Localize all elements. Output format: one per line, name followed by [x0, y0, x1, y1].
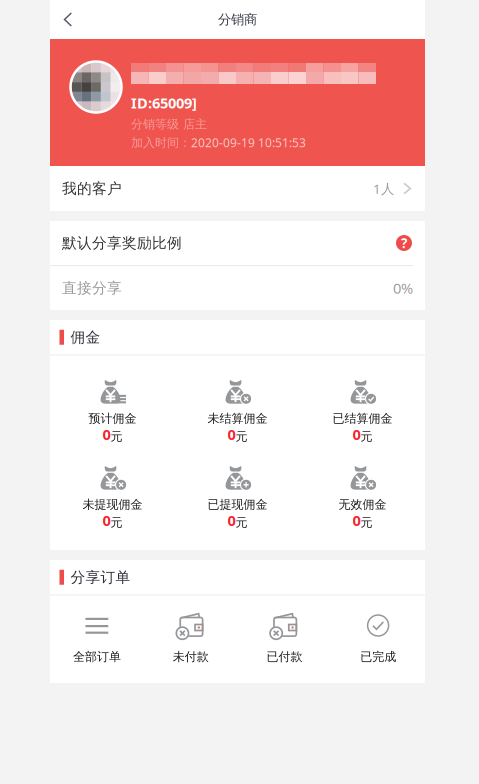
staticText: 元 — [360, 429, 372, 444]
staticText: 0 — [227, 510, 235, 530]
staticText: 已提现佣金 — [207, 497, 267, 512]
staticText: 元 — [110, 515, 122, 530]
staticText: 元 — [235, 515, 247, 530]
button[interactable]: 无效佣金 — [300, 463, 425, 549]
staticText: 已付款 — [266, 649, 302, 664]
staticText: 默认分享奖励比例 — [62, 234, 182, 252]
staticText: 0 — [227, 424, 235, 444]
button[interactable]: Back — [50, 0, 86, 39]
staticText: 未付款 — [173, 649, 209, 664]
button[interactable]: 已结算佣金 — [300, 377, 425, 463]
staticText: 佣金 — [70, 328, 100, 346]
staticText: 未提现佣金 — [82, 497, 142, 512]
staticText: 1人 — [373, 180, 394, 197]
staticText: 无效佣金 — [338, 497, 386, 512]
staticText: 元 — [360, 515, 372, 530]
staticText: 已结算佣金 — [332, 411, 392, 426]
button[interactable]: 未付款 — [144, 611, 238, 699]
staticText: 我的客户 — [62, 179, 122, 197]
staticText: ? — [401, 234, 407, 252]
staticText: 0 — [352, 424, 360, 444]
staticText: 0% — [393, 278, 413, 298]
staticText: 2020-09-19 10:51:53 — [191, 135, 306, 151]
staticText: 0 — [352, 510, 360, 530]
button[interactable]: Help — [396, 235, 412, 251]
staticText: 分销等级 店主 — [131, 117, 207, 132]
button[interactable]: 全部订单 — [50, 611, 144, 699]
button[interactable]: 我的客户 — [50, 166, 425, 211]
staticText: 加入时间： — [131, 135, 191, 150]
staticText: 已完成 — [360, 649, 396, 664]
button[interactable]: 已完成 — [331, 611, 425, 699]
staticText: 元 — [110, 429, 122, 444]
button[interactable]: 未结算佣金 — [175, 377, 300, 463]
staticText: 全部订单 — [73, 649, 121, 664]
button[interactable]: 已付款 — [237, 611, 331, 699]
staticText: 分销商 — [218, 11, 257, 28]
staticText: 直接分享 — [62, 279, 122, 297]
staticText: 0 — [102, 510, 110, 530]
staticText: 未结算佣金 — [207, 411, 267, 426]
staticText: 0 — [102, 424, 110, 444]
button[interactable]: 已提现佣金 — [175, 463, 300, 549]
staticText: 分享订单 — [70, 568, 130, 586]
button[interactable]: 未提现佣金 — [50, 463, 175, 549]
staticText: 元 — [235, 429, 247, 444]
staticText: 预计佣金 — [88, 411, 136, 426]
staticText: ID:65009] — [131, 93, 197, 112]
button[interactable]: 预计佣金 — [50, 377, 175, 463]
